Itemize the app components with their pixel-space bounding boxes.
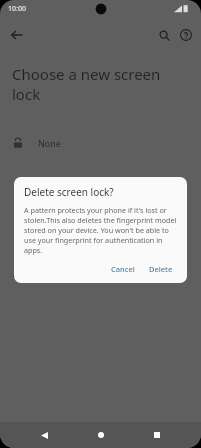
staticText: A pattern protects your phone if it's lo… [24,205,178,255]
staticText: 10:00 [8,4,26,14]
button[interactable]: Delete [144,261,178,277]
button[interactable]: Recent apps [147,425,167,445]
staticText: Delete screen lock? [24,185,114,199]
button[interactable]: None [0,128,201,158]
staticText: Delete [149,264,173,274]
button[interactable]: Search [153,24,175,46]
button[interactable]: Password [0,259,201,289]
button[interactable]: Back [6,24,28,46]
staticText: Choose a new screen lock [12,64,185,104]
button[interactable]: Help [175,24,197,46]
staticText: None [38,137,61,149]
button[interactable]: Back [34,425,54,445]
staticText: Cancel [111,264,135,274]
button[interactable]: Cancel [106,261,140,277]
button[interactable]: Home [91,425,111,445]
